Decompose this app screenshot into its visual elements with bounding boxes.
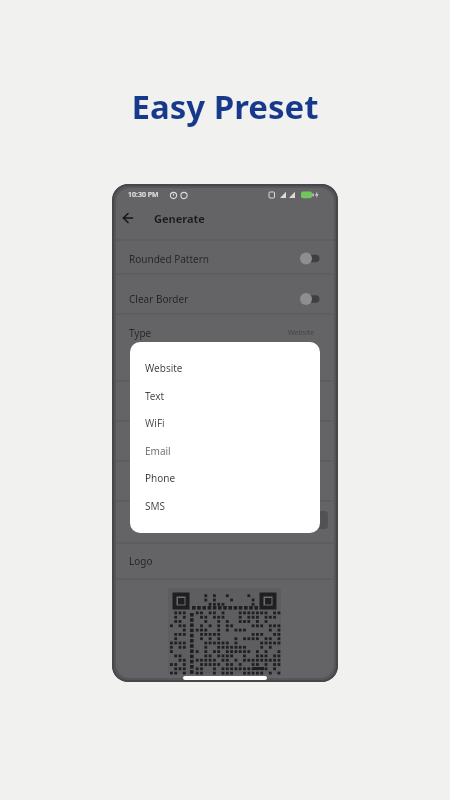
staticText: 10:30 PM bbox=[128, 190, 159, 200]
button[interactable] bbox=[118, 208, 178, 228]
staticText: Generate bbox=[154, 211, 205, 226]
staticText: Email bbox=[145, 444, 171, 458]
staticText: Phone bbox=[145, 471, 176, 485]
staticText: Clear Border bbox=[129, 292, 189, 306]
button[interactable]: SMS bbox=[130, 492, 320, 519]
button[interactable] bbox=[116, 284, 334, 314]
button[interactable]: Text bbox=[130, 382, 320, 409]
staticText: WiFi bbox=[145, 416, 165, 430]
staticText: Type bbox=[129, 326, 152, 340]
button[interactable]: WiFi bbox=[130, 409, 320, 436]
staticText: Website bbox=[145, 361, 183, 375]
staticText: Website bbox=[288, 328, 315, 338]
staticText: Rounded Pattern bbox=[129, 252, 209, 266]
button[interactable] bbox=[116, 318, 334, 348]
button[interactable]: Email bbox=[130, 437, 320, 464]
button[interactable] bbox=[116, 244, 334, 274]
staticText: SMS bbox=[145, 499, 166, 513]
staticText: Easy Preset bbox=[0, 84, 450, 129]
button[interactable]: Website bbox=[130, 354, 320, 381]
button[interactable]: Phone bbox=[130, 464, 320, 491]
staticText: Text bbox=[145, 389, 165, 403]
staticText: Logo bbox=[129, 554, 153, 568]
